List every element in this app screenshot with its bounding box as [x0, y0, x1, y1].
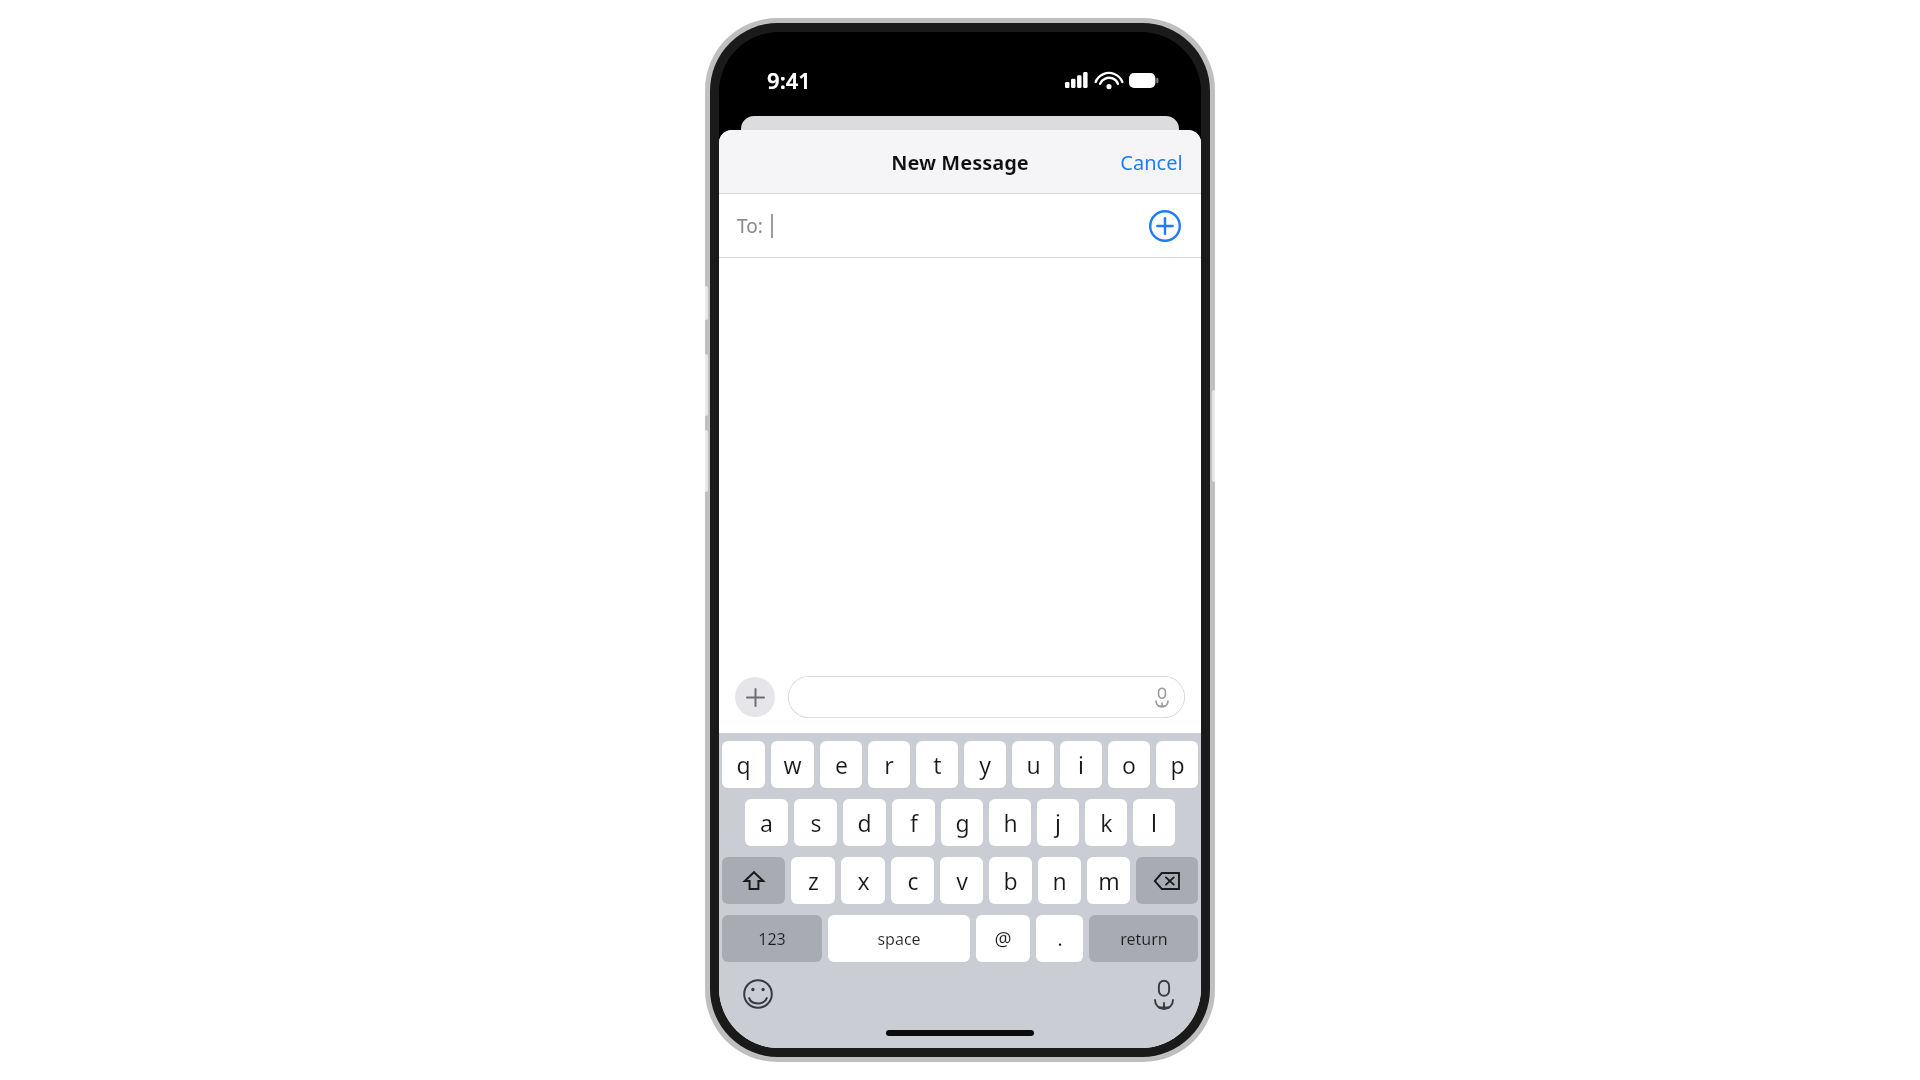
button[interactable]: m — [1087, 857, 1130, 904]
staticText: f — [910, 807, 918, 838]
button[interactable]: return — [1089, 915, 1198, 962]
button[interactable]: . — [1036, 915, 1083, 962]
button[interactable]: Emoji — [741, 977, 775, 1011]
staticText: k — [1100, 807, 1113, 838]
staticText: u — [1026, 749, 1041, 780]
staticText: r — [884, 749, 894, 780]
staticText: Cancel — [1120, 149, 1183, 176]
staticText: n — [1052, 865, 1067, 896]
other: Dictate — [1152, 687, 1172, 707]
button[interactable]: Dictation — [1149, 979, 1179, 1009]
button[interactable]: e — [820, 741, 862, 788]
staticText: z — [808, 865, 819, 896]
staticText: m — [1098, 865, 1120, 896]
button[interactable]: Shift — [722, 857, 785, 904]
button[interactable]: 123 — [722, 915, 822, 962]
button[interactable]: space — [828, 915, 970, 962]
staticText: a — [760, 807, 773, 838]
button[interactable]: s — [794, 799, 837, 846]
button[interactable]: r — [868, 741, 910, 788]
button[interactable]: Cancel — [1102, 139, 1201, 186]
staticText: c — [907, 865, 919, 896]
button[interactable]: f — [892, 799, 935, 846]
staticText: y — [979, 749, 991, 780]
staticText: To: — [737, 213, 763, 239]
button[interactable]: h — [989, 799, 1031, 846]
button[interactable]: u — [1012, 741, 1054, 788]
button[interactable]: y — [964, 741, 1006, 788]
button[interactable]: x — [841, 857, 885, 904]
button[interactable]: Add attachment — [735, 677, 775, 717]
staticText: v — [956, 865, 968, 896]
staticText: space — [877, 928, 921, 950]
staticText: New Message — [891, 149, 1029, 176]
button[interactable]: Add contact — [1149, 210, 1181, 242]
staticText: p — [1170, 749, 1185, 780]
button[interactable]: j — [1037, 799, 1079, 846]
staticText: h — [1003, 807, 1018, 838]
button[interactable]: To: — [719, 194, 1201, 258]
button[interactable]: t — [916, 741, 958, 788]
staticText: return — [1120, 928, 1168, 950]
button[interactable]: d — [843, 799, 886, 846]
staticText: . — [1057, 926, 1063, 952]
staticText: e — [835, 749, 848, 780]
button[interactable]: k — [1085, 799, 1127, 846]
button[interactable]: Dictate — [788, 676, 1185, 718]
staticText: d — [857, 807, 872, 838]
staticText: x — [857, 865, 870, 896]
button[interactable]: n — [1038, 857, 1081, 904]
staticText: i — [1078, 749, 1084, 780]
button[interactable]: g — [941, 799, 983, 846]
staticText: @ — [994, 926, 1012, 952]
button[interactable]: i — [1060, 741, 1102, 788]
button[interactable]: @ — [976, 915, 1030, 962]
staticText: s — [810, 807, 822, 838]
button[interactable]: w — [771, 741, 814, 788]
staticText: g — [955, 807, 970, 838]
staticText: b — [1003, 865, 1018, 896]
button[interactable]: b — [989, 857, 1032, 904]
staticText: o — [1122, 749, 1136, 780]
staticText: l — [1151, 807, 1157, 838]
staticText: q — [736, 749, 751, 780]
staticText: w — [783, 749, 802, 780]
button[interactable]: l — [1133, 799, 1175, 846]
button[interactable]: q — [722, 741, 765, 788]
button[interactable]: o — [1108, 741, 1150, 788]
staticText: j — [1055, 807, 1061, 838]
button[interactable]: c — [891, 857, 934, 904]
button[interactable]: v — [940, 857, 983, 904]
button[interactable]: a — [745, 799, 788, 846]
staticText: 123 — [758, 928, 786, 950]
button[interactable]: p — [1156, 741, 1198, 788]
staticText: t — [933, 749, 942, 780]
staticText: 9:41 — [767, 65, 811, 95]
button[interactable]: z — [791, 857, 835, 904]
button[interactable]: Backspace — [1136, 857, 1198, 904]
